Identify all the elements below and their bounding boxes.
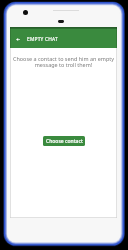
button[interactable]: Choose contact	[43, 136, 85, 146]
staticText: Choose a contact to send him an empty me…	[13, 55, 114, 68]
staticText: EMPTY CHAT	[27, 36, 59, 43]
button[interactable]: Back	[11, 32, 25, 46]
staticText: Choose contact	[46, 138, 83, 145]
